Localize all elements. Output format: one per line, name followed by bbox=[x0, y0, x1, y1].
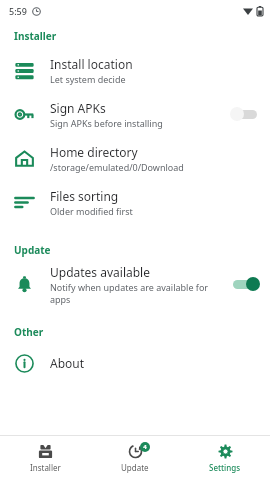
button[interactable]: Toggle on bbox=[230, 275, 260, 293]
staticText: Sign APKs before installing bbox=[50, 117, 163, 129]
staticText: Sign APKs bbox=[50, 100, 106, 116]
staticText: Updates available bbox=[50, 264, 150, 280]
staticText: Installer bbox=[14, 29, 57, 43]
button[interactable]: Settings bbox=[180, 436, 270, 480]
staticText: Notify when updates are available for ap… bbox=[50, 281, 222, 305]
button[interactable]: About bbox=[0, 344, 270, 382]
staticText: 5:59 bbox=[9, 5, 27, 17]
button[interactable]: Sign APKs bbox=[0, 92, 270, 136]
button[interactable]: Home directory bbox=[0, 136, 270, 180]
button[interactable]: Updates available bbox=[0, 262, 270, 306]
staticText: Other bbox=[14, 325, 44, 339]
staticText: Installer bbox=[30, 462, 61, 473]
staticText: Older modified first bbox=[50, 205, 133, 217]
staticText: Let system decide bbox=[50, 73, 126, 85]
button[interactable]: Installer bbox=[0, 436, 90, 480]
staticText: /storage/emulated/0/Download bbox=[50, 161, 184, 173]
button[interactable]: 4 bbox=[90, 436, 180, 480]
staticText: Files sorting bbox=[50, 188, 119, 204]
button[interactable]: Files sorting bbox=[0, 180, 270, 224]
staticText: 4 bbox=[143, 443, 147, 451]
staticText: Install location bbox=[50, 56, 133, 72]
staticText: Update bbox=[14, 243, 51, 257]
button[interactable]: Toggle off bbox=[230, 105, 260, 123]
staticText: Home directory bbox=[50, 144, 138, 160]
staticText: About bbox=[50, 355, 85, 371]
staticText: Update bbox=[121, 462, 149, 473]
button[interactable]: Install location bbox=[0, 48, 270, 92]
staticText: Settings bbox=[209, 462, 241, 473]
